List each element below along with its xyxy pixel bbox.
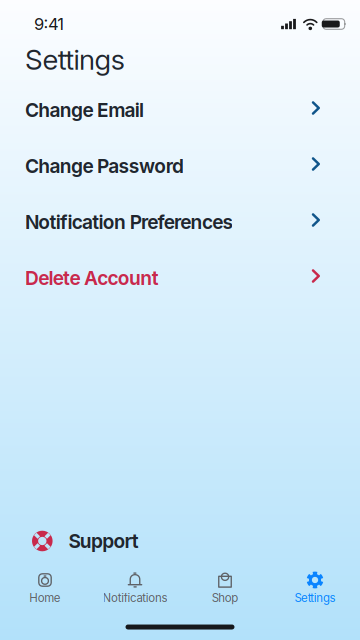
staticText: Change Email [25,98,144,122]
staticText: Delete Account [25,266,159,290]
staticText: Notifications [102,591,167,605]
staticText: Settings [25,43,125,76]
button[interactable]: Notifications [90,568,180,614]
staticText: Change Password [25,154,184,178]
button[interactable]: Notification Preferences [0,194,360,250]
button[interactable]: Change Password [0,138,360,194]
staticText: Support [69,529,139,553]
staticText: Shop [212,591,238,605]
button[interactable]: Change Email [0,82,360,138]
button[interactable]: Settings [270,568,360,614]
button[interactable]: Support [0,520,360,562]
button[interactable]: Home [0,568,90,614]
staticText: Home [29,591,61,605]
button[interactable]: Shop [180,568,270,614]
staticText: 9:41 [34,14,64,34]
button[interactable]: Delete Account [0,250,360,306]
staticText: Notification Preferences [25,210,233,234]
staticText: Settings [294,591,336,605]
